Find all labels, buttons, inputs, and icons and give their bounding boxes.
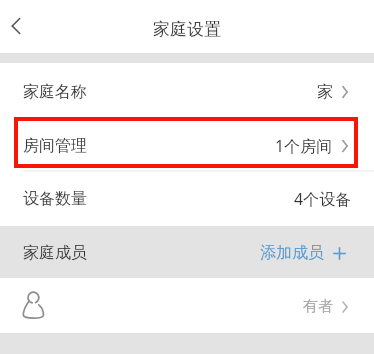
staticText: 家庭名称 — [23, 82, 87, 102]
button[interactable]: 设备数量 — [0, 170, 374, 226]
staticText: 家庭设置 — [153, 19, 221, 40]
staticText: 设备数量 — [23, 189, 87, 209]
other: Member avatar — [22, 290, 46, 320]
staticText: 有者 — [303, 297, 333, 316]
button[interactable]: 家庭名称 — [0, 63, 374, 116]
staticText: 4个设备 — [294, 188, 352, 210]
staticText: 家庭成员 — [23, 243, 87, 263]
staticText: 添加成员 — [260, 243, 324, 263]
button[interactable]: Member avatar — [0, 278, 374, 333]
button[interactable]: 添加成员 — [260, 243, 346, 263]
button[interactable]: Back — [0, 4, 38, 48]
staticText: 家 — [317, 82, 333, 102]
button[interactable]: 房间管理 — [0, 116, 374, 170]
staticText: 房间管理 — [23, 136, 87, 156]
staticText: 1个房间 — [275, 135, 333, 157]
